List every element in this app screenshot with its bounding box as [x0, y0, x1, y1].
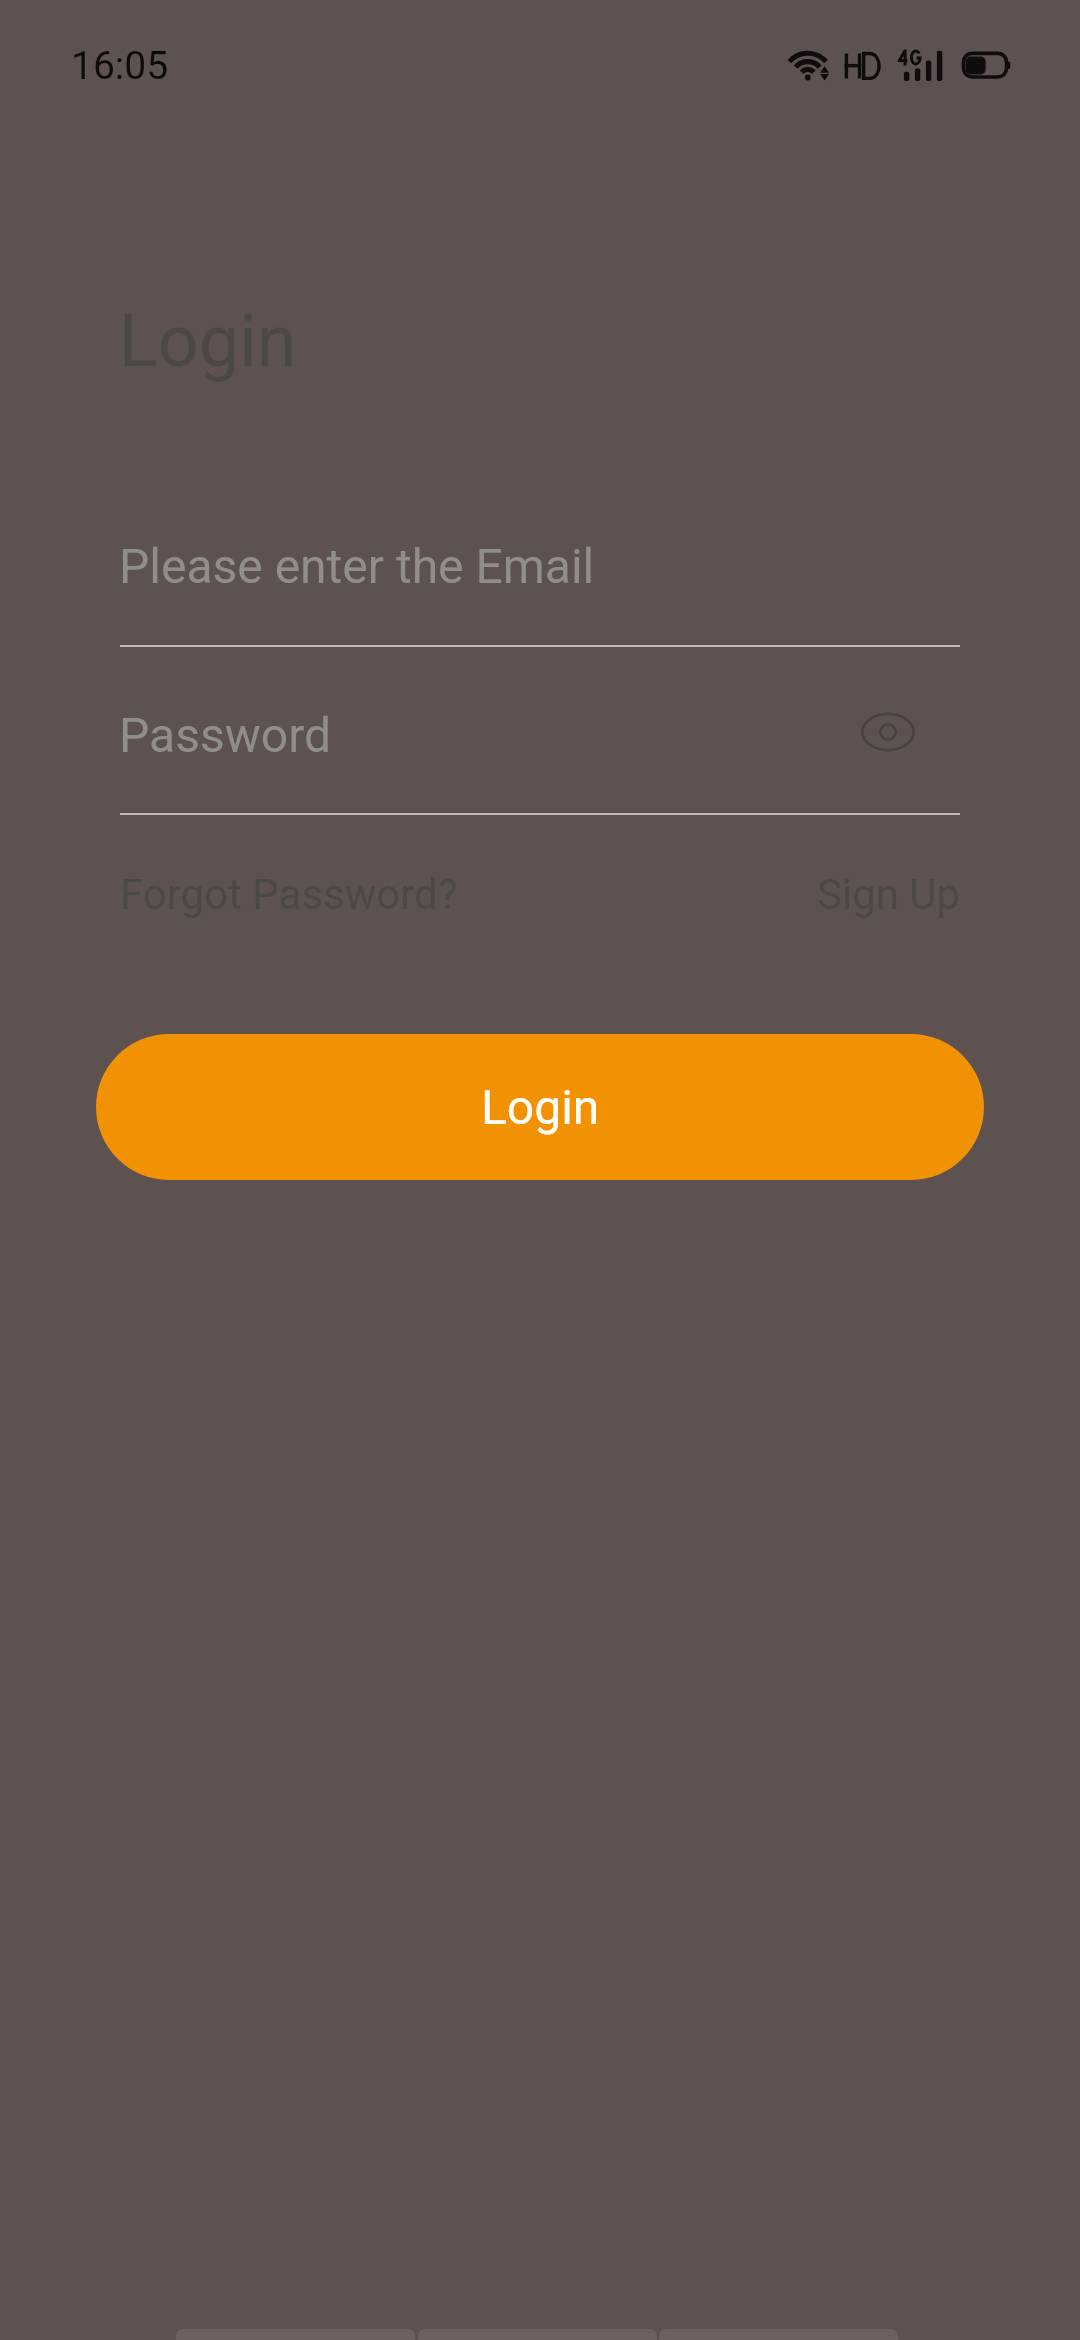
button[interactable]: Forgot Password? [120, 870, 458, 919]
staticText: Sign Up [817, 870, 961, 919]
button[interactable]: Sign Up [817, 870, 961, 919]
button[interactable]: Login [96, 1034, 984, 1180]
staticText: Login [119, 299, 297, 383]
staticText: 16:05 [71, 43, 169, 89]
button[interactable]: Show password [857, 701, 919, 763]
staticText: Login [481, 1079, 600, 1135]
staticText: Forgot Password? [120, 870, 458, 919]
staticText: Please enter the Email [119, 538, 595, 594]
staticText: Password [119, 707, 332, 763]
